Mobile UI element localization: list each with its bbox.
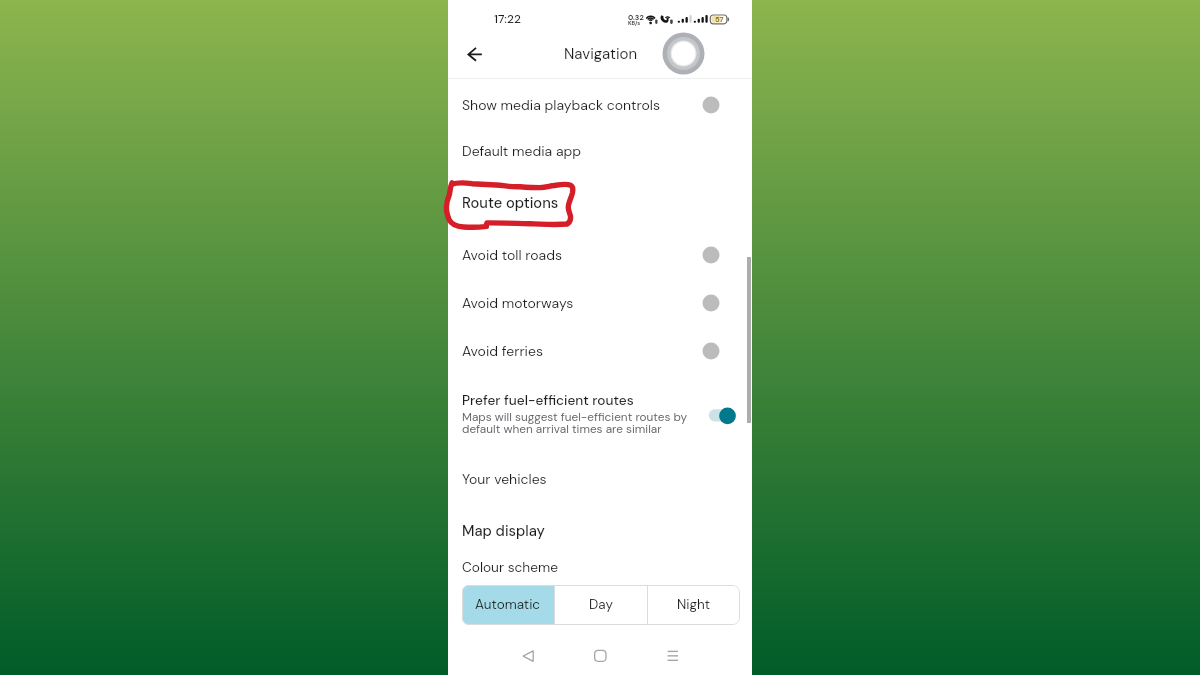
button[interactable]: Prefer fuel-efficient routes bbox=[448, 384, 752, 450]
button[interactable]: Prefer fuel-efficient routes toggle bbox=[706, 406, 738, 426]
button[interactable]: Avoid motorways bbox=[448, 279, 752, 327]
button[interactable]: Automatic bbox=[462, 585, 554, 625]
button[interactable]: Default media app bbox=[448, 127, 752, 175]
button[interactable]: Your vehicles bbox=[448, 455, 752, 503]
staticText: Prefer fuel-efficient routes bbox=[462, 391, 634, 409]
button[interactable]: Back bbox=[456, 42, 484, 70]
staticText: Your vehicles bbox=[462, 470, 547, 488]
button[interactable]: Route options bbox=[448, 178, 752, 226]
staticText: Show media playback controls bbox=[462, 96, 660, 114]
staticText: KB/s bbox=[628, 20, 641, 27]
button[interactable]: Map display bbox=[462, 522, 545, 541]
button[interactable]: Account bbox=[662, 42, 706, 86]
staticText: Automatic bbox=[475, 596, 541, 614]
button[interactable]: Avoid toll roads bbox=[448, 231, 752, 279]
staticText: Day bbox=[589, 596, 613, 614]
button[interactable]: Home bbox=[590, 646, 610, 666]
staticText: Night bbox=[677, 596, 711, 614]
button[interactable]: Avoid ferries bbox=[448, 327, 752, 375]
staticText: Avoid ferries bbox=[462, 342, 543, 360]
button[interactable]: Night bbox=[648, 585, 740, 625]
button[interactable]: Navigation bbox=[564, 44, 638, 64]
staticText: Avoid motorways bbox=[462, 294, 574, 312]
button[interactable]: Navigate back bbox=[518, 646, 538, 666]
staticText: Default media app bbox=[462, 142, 582, 160]
staticText: 17:22 bbox=[494, 11, 521, 27]
button[interactable]: Day bbox=[555, 585, 647, 625]
staticText: 57 bbox=[715, 15, 724, 25]
button[interactable]: Recent apps bbox=[663, 646, 683, 666]
staticText: Maps will suggest fuel-efficient routes … bbox=[462, 409, 717, 437]
button[interactable]: Show media playback controls bbox=[448, 81, 752, 129]
staticText: Avoid toll roads bbox=[462, 246, 562, 264]
staticText: Colour scheme bbox=[462, 558, 558, 576]
staticText: 0.32 bbox=[628, 13, 644, 23]
staticText: Route options bbox=[462, 193, 559, 212]
